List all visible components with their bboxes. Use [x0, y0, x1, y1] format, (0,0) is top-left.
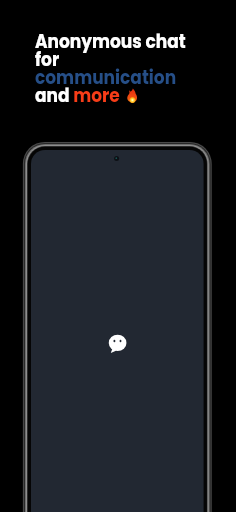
staticText: Anonymous chat for communication and mor… — [35, 28, 186, 109]
